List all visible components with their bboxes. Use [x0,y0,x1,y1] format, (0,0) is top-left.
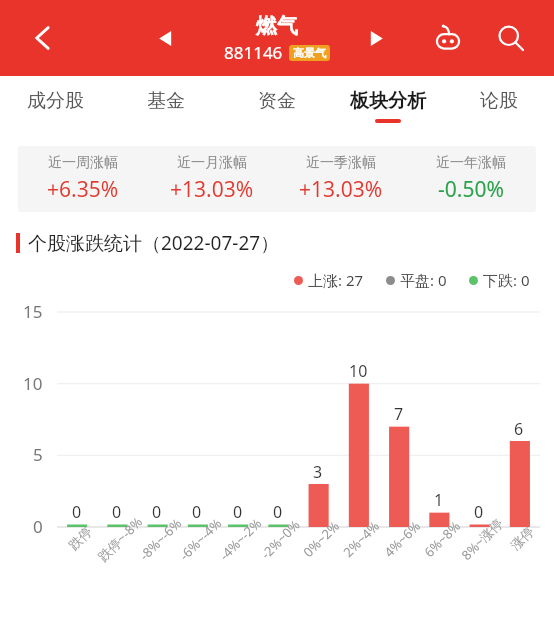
button[interactable]: Back [20,15,66,61]
staticText: 近一季涨幅 [306,154,376,172]
staticText: 0 [233,501,243,523]
staticText: 平盘: 0 [400,270,447,290]
staticText: 3 [313,461,323,483]
staticText: 881146 [224,41,283,64]
staticText: -8%~-6% [135,514,186,564]
staticText: 下跌: 0 [483,270,530,290]
staticText: +13.03% [299,175,383,204]
staticText: 0 [112,501,122,523]
staticText: 1 [434,489,444,511]
staticText: 0 [72,501,82,523]
staticText: 7 [394,403,404,425]
staticText: 论股 [480,89,518,113]
button[interactable]: Previous sector [145,18,185,58]
staticText: 10 [23,372,43,395]
staticText: 近一年涨幅 [436,154,506,172]
button[interactable]: AI assistant [426,16,470,60]
button[interactable]: 板块分析 [332,76,443,136]
staticText: 10 [349,360,368,382]
staticText: 近一月涨幅 [177,154,247,172]
staticText: 板块分析 [350,89,426,113]
staticText: 0 [474,501,484,523]
staticText: 跌停~-8% [94,513,146,565]
staticText: 0 [33,515,43,538]
staticText: +13.03% [170,175,254,204]
staticText: 涨停 [507,523,537,553]
staticText: 15 [23,300,43,323]
staticText: 高景气 [293,46,326,60]
staticText: 8%~涨停 [457,514,507,564]
staticText: -2%~0% [257,515,304,563]
staticText: -4%~-2% [215,514,266,564]
button[interactable]: 资金 [221,76,332,136]
staticText: 0 [152,501,162,523]
staticText: 6%~8% [420,517,464,561]
staticText: 跌停 [65,523,95,553]
staticText: 5 [33,443,43,466]
button[interactable]: 论股 [443,76,554,136]
staticText: 成分股 [27,89,84,113]
staticText: 2%~4% [339,517,383,561]
staticText: -6%~-4% [175,514,226,564]
staticText: 资金 [258,89,296,113]
staticText: 0 [192,501,202,523]
button[interactable]: Next sector [356,18,396,58]
staticText: 基金 [147,89,185,113]
staticText: 0%~2% [299,517,343,561]
staticText: +6.35% [47,175,119,204]
staticText: 上涨: 27 [308,270,364,290]
button[interactable]: Search [488,15,534,61]
staticText: 6 [514,418,524,440]
button[interactable]: 成分股 [0,76,110,136]
staticText: 4%~6% [380,517,424,561]
staticText: 燃气 [256,13,298,39]
staticText: 0 [273,501,283,523]
button[interactable]: 基金 [110,76,221,136]
staticText: -0.50% [438,175,504,204]
staticText: 个股涨跌统计（2022-07-27） [28,230,280,256]
staticText: 近一周涨幅 [48,154,118,172]
